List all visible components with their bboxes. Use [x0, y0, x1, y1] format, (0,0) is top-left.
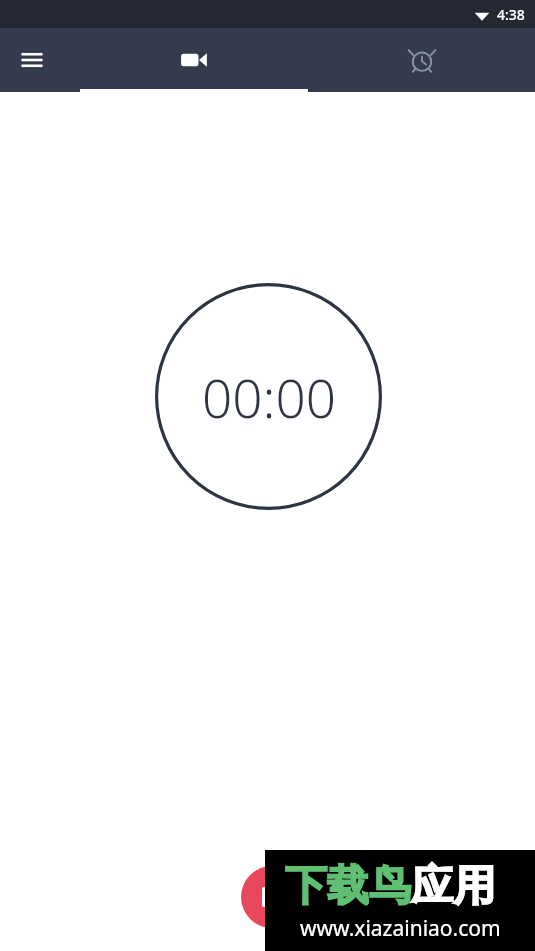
staticText: 00:00 [202, 361, 336, 433]
button[interactable]: Open navigation menu [8, 36, 56, 84]
button[interactable]: Video recorder tab [80, 28, 308, 92]
button[interactable]: Stop recording [241, 866, 303, 928]
staticText: 下载鸟 [285, 860, 411, 913]
staticText: www.xiazainiao.com [300, 914, 501, 943]
staticText: 应用 [411, 860, 495, 913]
button[interactable]: Alarm tab [308, 28, 535, 92]
staticText: 4:38 [497, 5, 525, 24]
button[interactable]: 00:00 [155, 283, 382, 510]
